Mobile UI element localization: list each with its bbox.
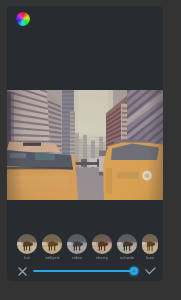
button[interactable]: valkyrie [42, 234, 62, 260]
button[interactable]: Intensity slider [32, 263, 140, 279]
staticText: rideo [72, 255, 82, 260]
button[interactable]: Cancel [12, 263, 32, 279]
staticText: sherry [96, 255, 108, 260]
button[interactable]: luxo [142, 234, 158, 260]
button[interactable]: echode [117, 234, 137, 260]
button[interactable]: Apply [141, 263, 159, 279]
staticText: echode [120, 255, 134, 260]
staticText: valkyrie [45, 255, 60, 260]
staticText: lux [24, 255, 30, 260]
staticText: luxo [146, 255, 154, 260]
button[interactable]: sherry [92, 234, 112, 260]
button[interactable]: Color picker [16, 12, 30, 26]
button[interactable]: lux [17, 234, 37, 260]
button[interactable]: rideo [67, 234, 87, 260]
